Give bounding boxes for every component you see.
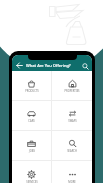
button[interactable]: SWAPS <box>52 101 92 130</box>
button[interactable]: Search <box>80 61 90 71</box>
button[interactable]: Back <box>15 61 24 70</box>
staticText: MORE <box>68 180 76 183</box>
staticText: SERVICES <box>26 180 38 183</box>
button[interactable]: JOBS <box>12 131 51 160</box>
staticText: SWAPS <box>68 119 77 123</box>
staticText: JOBS <box>29 149 35 153</box>
staticText: PROPERTIES <box>64 89 80 93</box>
staticText: SEARCH <box>67 149 77 153</box>
button[interactable]: PRODUCTS <box>12 71 51 100</box>
button[interactable]: SERVICES <box>12 157 51 183</box>
staticText: PRODUCTS <box>25 89 39 93</box>
button[interactable]: MORE <box>52 157 92 183</box>
button[interactable]: SEARCH <box>52 131 92 160</box>
button[interactable]: PROPERTIES <box>52 71 92 100</box>
staticText: CARS <box>28 119 35 123</box>
button[interactable]: CARS <box>12 101 51 130</box>
staticText: What Are You Offering? <box>26 63 71 68</box>
